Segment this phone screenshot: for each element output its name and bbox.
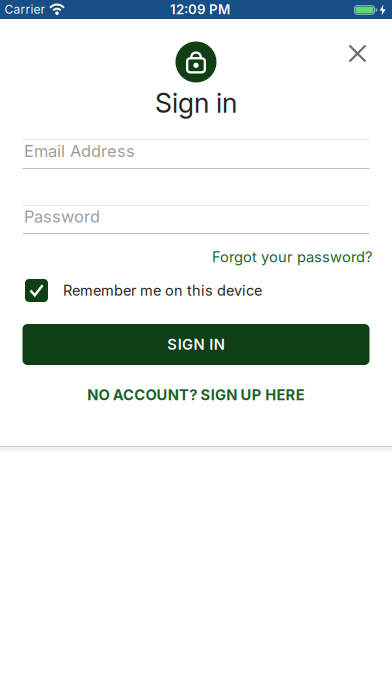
staticText: Forgot your password? (212, 248, 372, 266)
staticText: Sign in (155, 87, 237, 119)
staticText: Password (24, 207, 100, 226)
staticText: Remember me on this device (63, 282, 262, 299)
staticText: SIGN IN (167, 336, 225, 353)
staticText: Carrier (4, 2, 45, 17)
staticText: 12:09 PM (170, 2, 230, 17)
staticText: NO ACCOUNT? SIGN UP HERE (87, 386, 305, 404)
staticText: Email Address (24, 141, 135, 161)
